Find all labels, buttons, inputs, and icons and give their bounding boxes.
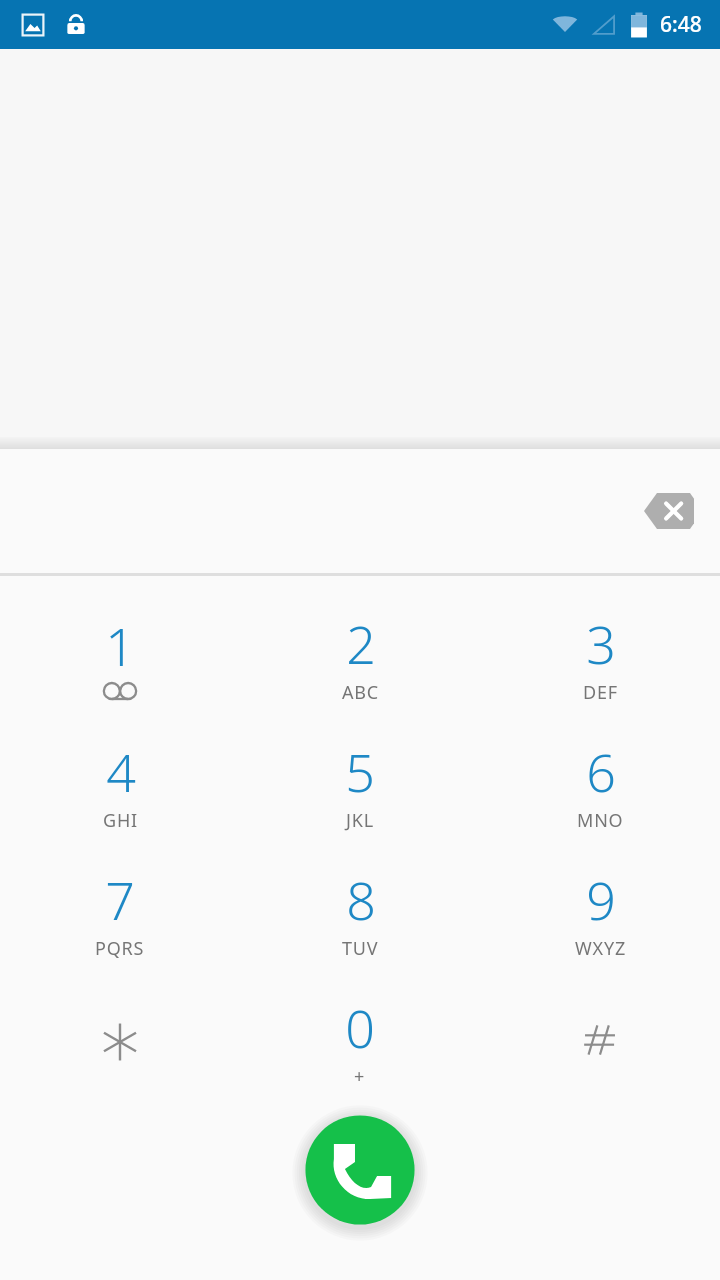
staticText: PQRS: [95, 936, 145, 961]
staticText: MNO: [577, 808, 624, 833]
button[interactable]: 6: [480, 720, 720, 848]
button[interactable]: 3: [480, 592, 720, 720]
staticText: 5: [345, 736, 375, 807]
staticText: JKL: [346, 808, 374, 833]
staticText: GHI: [103, 808, 138, 833]
button[interactable]: 8: [240, 848, 480, 976]
button[interactable]: 0: [240, 976, 480, 1104]
staticText: 7: [105, 864, 135, 935]
staticText: WXYZ: [575, 936, 626, 961]
button[interactable]: 5: [240, 720, 480, 848]
staticText: 3: [586, 608, 616, 679]
staticText: 4: [106, 736, 136, 807]
staticText: 8: [346, 864, 376, 935]
button[interactable]: Backspace: [638, 485, 700, 537]
staticText: TUV: [342, 936, 379, 961]
button[interactable]: 4: [0, 720, 240, 848]
button[interactable]: 2: [240, 592, 480, 720]
button[interactable]: 7: [0, 848, 240, 976]
button[interactable]: [0, 976, 240, 1104]
staticText: 6: [586, 736, 616, 807]
staticText: 0: [345, 992, 375, 1063]
button[interactable]: Call: [295, 1108, 425, 1232]
button[interactable]: [480, 976, 720, 1104]
button[interactable]: 1: [0, 592, 240, 720]
staticText: ABC: [342, 680, 379, 705]
staticText: 1: [105, 610, 135, 681]
staticText: 2: [346, 608, 376, 679]
staticText: 6:48: [660, 10, 702, 39]
staticText: +: [354, 1064, 366, 1089]
button[interactable]: 9: [480, 848, 720, 976]
staticText: DEF: [583, 680, 618, 705]
staticText: 9: [586, 864, 616, 935]
